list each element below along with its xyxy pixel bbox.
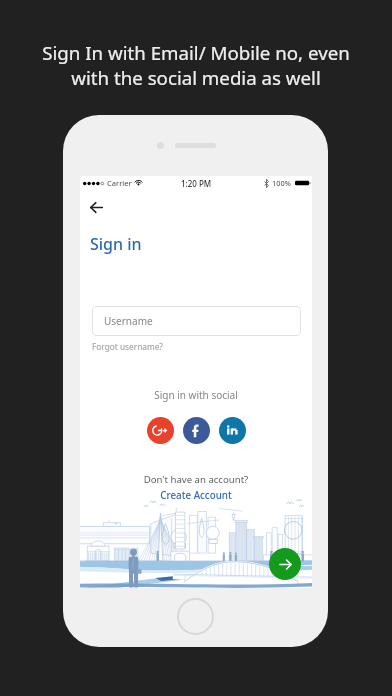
staticText: 1:20 PM (181, 178, 212, 189)
staticText: Create Account (80, 489, 312, 502)
button[interactable]: Forgot username? (92, 341, 163, 352)
button[interactable]: Continue (269, 548, 301, 580)
button[interactable]: Sign in with Facebook (183, 417, 210, 444)
button[interactable]: Sign in with Google (147, 417, 174, 444)
staticText: 100% (272, 178, 291, 188)
button[interactable]: Sign in with LinkedIn (219, 417, 246, 444)
staticText: Sign in with social (80, 388, 312, 402)
staticText: Don't have an account? (80, 473, 312, 486)
staticText: with the social media as well (71, 65, 321, 90)
staticText: Sign in (90, 233, 142, 255)
button[interactable]: Username (92, 306, 301, 336)
staticText: Sign In with Email/ Mobile no, even (42, 40, 350, 65)
staticText: Carrier (107, 178, 132, 188)
staticText: Forgot username? (92, 341, 163, 352)
button[interactable]: Create Account (80, 489, 312, 502)
staticText: Username (104, 314, 153, 328)
button[interactable]: Back (82, 193, 110, 221)
